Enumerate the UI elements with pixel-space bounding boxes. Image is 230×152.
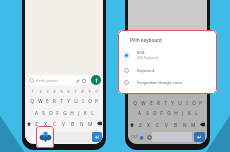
button[interactable]: Backspace (95, 119, 103, 128)
button[interactable]: O (190, 98, 197, 107)
button[interactable]: S (40, 108, 47, 117)
button[interactable]: V (59, 119, 68, 128)
button[interactable]: V (162, 120, 171, 129)
button[interactable]: Emoji (138, 134, 144, 140)
button[interactable]: 2 (36, 87, 44, 96)
button[interactable]: F (158, 108, 165, 117)
button[interactable]: E (44, 96, 51, 105)
button[interactable]: 9 (86, 87, 93, 96)
button[interactable]: W (36, 96, 44, 105)
button[interactable]: N (77, 119, 86, 128)
button[interactable]: Space (43, 132, 90, 142)
staticText: 7 (74, 89, 77, 94)
button[interactable]: T (58, 96, 65, 105)
button[interactable]: P (93, 96, 100, 105)
button[interactable]: 3 (44, 87, 51, 96)
button[interactable]: Q (28, 96, 36, 105)
button[interactable]: U (176, 98, 183, 107)
staticText: E (150, 100, 153, 106)
staticText: Keyboard (137, 68, 155, 73)
button[interactable]: A (32, 108, 40, 117)
button[interactable]: S (143, 108, 151, 117)
staticText: 1 (31, 89, 34, 94)
button[interactable]: Numbers (26, 131, 43, 142)
button[interactable]: P (197, 98, 204, 107)
staticText: 0 (95, 89, 98, 94)
button[interactable]: 0 (93, 87, 100, 96)
staticText: C (53, 121, 56, 127)
button[interactable]: Z (32, 119, 41, 128)
button[interactable]: Keyboard (123, 64, 213, 76)
staticText: S (146, 110, 149, 116)
button[interactable]: N (180, 120, 189, 129)
button[interactable]: L (193, 108, 200, 117)
button[interactable]: Ketik pesan (27, 76, 89, 85)
staticText: T (60, 98, 63, 104)
button[interactable]: 1 (28, 87, 36, 96)
button[interactable]: 7 (72, 87, 79, 96)
button[interactable]: I (183, 98, 190, 107)
button[interactable]: F (54, 108, 61, 117)
button[interactable]: K (82, 108, 89, 117)
button[interactable]: Settings (146, 134, 152, 140)
button[interactable]: 5 (58, 87, 65, 96)
button[interactable]: K (186, 108, 193, 117)
button[interactable]: W (139, 98, 147, 107)
staticText: M (88, 121, 93, 127)
staticText: N (80, 121, 84, 127)
button[interactable]: BCA (123, 49, 213, 61)
button[interactable]: R (51, 96, 58, 105)
button[interactable]: Pengetikan Google voice (123, 76, 213, 88)
button[interactable]: X (41, 119, 50, 128)
button[interactable]: U (72, 96, 79, 105)
button[interactable]: Enter (194, 132, 205, 142)
button[interactable]: B (68, 119, 77, 128)
staticText: O (192, 100, 196, 106)
button[interactable]: D (151, 108, 158, 117)
staticText: X (147, 122, 150, 128)
button[interactable]: J (75, 108, 82, 117)
staticText: Pengetikan Google voice (137, 80, 183, 85)
staticText: 9 (88, 89, 91, 94)
button[interactable]: X (144, 120, 153, 129)
button[interactable]: Backspace (198, 120, 207, 129)
button[interactable]: A (135, 108, 143, 117)
button[interactable]: H (172, 108, 179, 117)
button[interactable]: C (50, 119, 59, 128)
staticText: P (199, 100, 202, 106)
button[interactable]: M (189, 120, 198, 129)
button[interactable]: L (89, 108, 96, 117)
button[interactable]: B (171, 120, 180, 129)
button[interactable]: BCA Keyboard (36, 126, 54, 148)
button[interactable]: 6 (65, 87, 72, 96)
button[interactable]: E (147, 98, 155, 107)
button[interactable]: ?123 (130, 131, 138, 142)
staticText: A (35, 110, 38, 116)
button[interactable]: C (153, 120, 162, 129)
button[interactable]: O (86, 96, 93, 105)
button[interactable]: Y (65, 96, 72, 105)
button[interactable]: Enter (92, 132, 102, 142)
button[interactable]: Shift (25, 119, 32, 128)
staticText: I (82, 98, 84, 104)
button[interactable]: H (68, 108, 75, 117)
button[interactable]: J (179, 108, 186, 117)
button[interactable]: I (79, 96, 86, 105)
staticText: G (63, 110, 67, 116)
button[interactable]: Y (169, 98, 176, 107)
button[interactable]: D (47, 108, 54, 117)
button[interactable]: M (86, 119, 95, 128)
button[interactable]: 4 (51, 87, 58, 96)
button[interactable]: Q (131, 98, 139, 107)
staticText: 4 (53, 89, 56, 94)
button[interactable]: 8 (79, 87, 86, 96)
button[interactable]: Kirim (91, 75, 101, 85)
staticText: ↵ (197, 134, 202, 140)
button[interactable]: Shift (128, 120, 136, 129)
button[interactable]: G (165, 108, 172, 117)
button[interactable]: Z (136, 120, 144, 129)
button[interactable]: R (155, 98, 162, 107)
button[interactable]: G (61, 108, 68, 117)
button[interactable]: T (162, 98, 169, 107)
